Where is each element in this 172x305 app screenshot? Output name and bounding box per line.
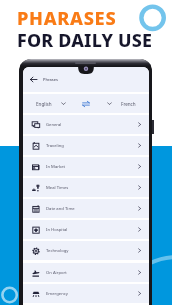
button[interactable]: In Hospital bbox=[23, 220, 149, 239]
staticText: English bbox=[36, 101, 52, 107]
button[interactable]: General bbox=[23, 115, 149, 134]
staticText: Date and Time bbox=[46, 206, 75, 212]
button[interactable]: Traveling bbox=[23, 136, 149, 155]
staticText: Emergency bbox=[46, 291, 68, 297]
staticText: Technology bbox=[46, 248, 69, 254]
staticText: PHARASES bbox=[17, 6, 117, 31]
button[interactable]: Date and Time bbox=[23, 199, 149, 218]
button[interactable]: On Airport bbox=[23, 263, 149, 282]
staticText: FOR DAILY USE bbox=[17, 28, 153, 52]
button[interactable]: English bbox=[23, 94, 78, 113]
staticText: French bbox=[121, 101, 136, 107]
button[interactable]: Technology bbox=[23, 241, 149, 260]
button[interactable]: Swap languages bbox=[78, 94, 94, 113]
button[interactable]: Back bbox=[23, 67, 149, 92]
button[interactable]: Meal Times bbox=[23, 178, 149, 197]
button[interactable]: French bbox=[94, 94, 149, 113]
staticText: General bbox=[46, 122, 62, 128]
staticText: Meal Times bbox=[46, 185, 69, 191]
staticText: In Hospital bbox=[46, 227, 68, 233]
staticText: In Market bbox=[46, 164, 66, 170]
button[interactable]: Emergency bbox=[23, 284, 149, 303]
staticText: On Airport bbox=[46, 270, 67, 276]
staticText: Phrases bbox=[43, 77, 59, 82]
button[interactable]: Back bbox=[28, 74, 39, 85]
button[interactable]: In Market bbox=[23, 157, 149, 176]
staticText: Traveling bbox=[46, 143, 64, 149]
